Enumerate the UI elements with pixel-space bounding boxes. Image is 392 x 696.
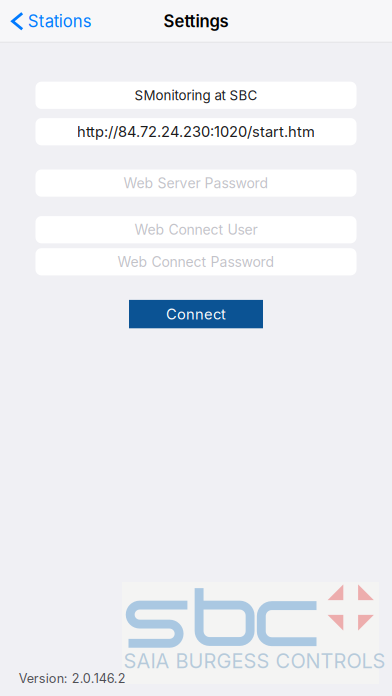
button[interactable]: Stations: [0, 0, 103, 42]
staticText: Version: 2.0.146.2: [19, 671, 126, 686]
staticText: Settings: [163, 11, 228, 31]
staticText: Connect: [166, 305, 226, 323]
staticText: SMonitoring at SBC: [134, 87, 257, 103]
staticText: Stations: [28, 11, 92, 31]
staticText: Web Server Password: [123, 175, 268, 191]
staticText: Web Connect User: [134, 221, 257, 238]
button[interactable]: Connect: [129, 300, 263, 328]
staticText: SAIA BURGESS CONTROLS: [123, 649, 385, 673]
staticText: http://84.72.24.230:1020/start.htm: [77, 123, 315, 140]
staticText: Web Connect Password: [117, 253, 274, 270]
